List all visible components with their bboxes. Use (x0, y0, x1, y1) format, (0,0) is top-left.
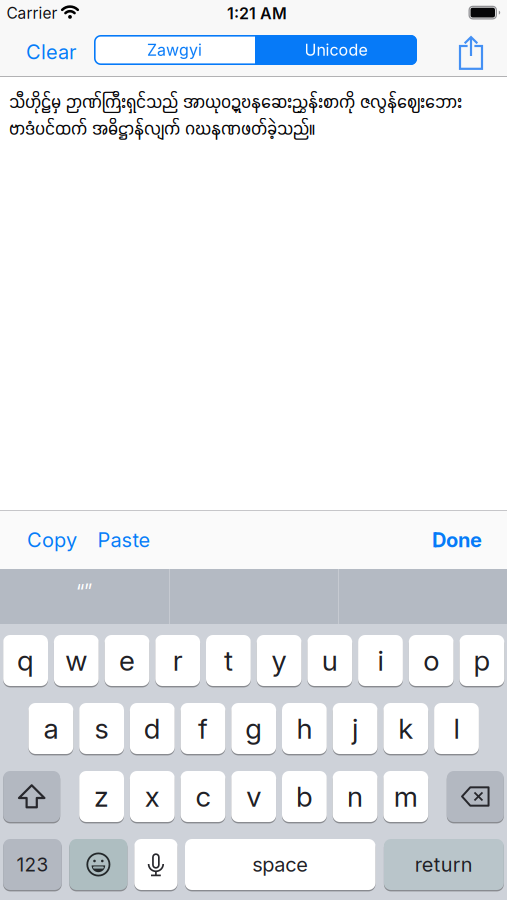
button[interactable]: Dictate (134, 839, 177, 890)
staticText: u (322, 644, 338, 677)
staticText: r (173, 644, 183, 677)
button[interactable]: Clear (16, 35, 86, 69)
staticText: သီဟိုဠ်မှ ဉာဏ်ကြီးရှင်သည် အာယုဝဍ္ဎနဆေးညွ… (9, 88, 462, 142)
button[interactable]: Paste (92, 525, 156, 555)
button[interactable]: Zawgyi (94, 35, 255, 65)
staticText: n (347, 780, 363, 813)
staticText: space (252, 852, 308, 877)
button[interactable]: e (105, 635, 149, 686)
staticText: p (473, 644, 490, 677)
staticText: j (352, 712, 358, 745)
button[interactable]: k (383, 703, 428, 754)
staticText: Zawgyi (147, 40, 202, 60)
staticText: c (195, 780, 210, 813)
staticText: f (198, 712, 208, 745)
button[interactable]: Emoji (69, 839, 127, 890)
button[interactable]: Copy (22, 525, 82, 555)
button[interactable]: f (181, 703, 225, 754)
button[interactable]: 123 (3, 839, 62, 890)
button[interactable]: g (231, 703, 276, 754)
button[interactable]: y (257, 635, 301, 686)
button[interactable]: Done (425, 525, 489, 555)
staticText: x (145, 780, 160, 813)
button[interactable]: o (409, 635, 454, 686)
staticText: Paste (97, 528, 150, 552)
staticText: “” (76, 579, 92, 602)
staticText: a (43, 712, 58, 745)
button[interactable]: v (231, 771, 276, 822)
staticText: i (377, 644, 383, 677)
staticText: w (65, 644, 87, 677)
staticText: Carrier (6, 4, 57, 22)
staticText: Unicode (304, 40, 367, 60)
button[interactable]: j (333, 703, 377, 754)
staticText: b (296, 780, 313, 813)
button[interactable]: i (358, 635, 403, 686)
staticText: y (272, 644, 287, 677)
staticText: Clear (26, 40, 76, 64)
staticText: 1:21 AM (227, 4, 287, 23)
button[interactable]: q (3, 635, 48, 686)
staticText: z (94, 780, 109, 813)
staticText: v (246, 780, 261, 813)
button[interactable]: p (459, 635, 504, 686)
button[interactable]: a (28, 703, 73, 754)
staticText: q (17, 644, 34, 677)
staticText: l (453, 712, 459, 745)
button[interactable]: n (333, 771, 377, 822)
staticText: g (245, 712, 262, 745)
staticText: return (415, 852, 473, 877)
button[interactable]: l (434, 703, 479, 754)
staticText: e (119, 644, 135, 677)
button[interactable]: c (181, 771, 225, 822)
staticText: 123 (16, 853, 48, 876)
button[interactable]: Shift (3, 771, 60, 822)
staticText: t (224, 644, 233, 677)
button[interactable]: d (130, 703, 175, 754)
button[interactable]: b (282, 771, 327, 822)
staticText: d (144, 712, 161, 745)
staticText: Copy (27, 528, 77, 552)
staticText: Done (432, 528, 482, 552)
button[interactable]: space (185, 839, 375, 890)
button[interactable]: t (206, 635, 251, 686)
button[interactable]: r (155, 635, 200, 686)
button[interactable]: u (307, 635, 352, 686)
button[interactable]: h (282, 703, 327, 754)
button[interactable]: return (384, 839, 504, 890)
button[interactable]: m (383, 771, 428, 822)
button[interactable]: Share (449, 31, 493, 75)
button[interactable]: w (54, 635, 99, 686)
button[interactable]: Unicode (255, 35, 417, 65)
button[interactable]: z (79, 771, 124, 822)
staticText: k (398, 712, 413, 745)
button[interactable]: Delete (447, 771, 504, 822)
staticText: h (296, 712, 312, 745)
staticText: o (423, 644, 439, 677)
button[interactable]: x (130, 771, 175, 822)
staticText: s (95, 712, 109, 745)
staticText: m (394, 780, 418, 813)
button[interactable]: “” (0, 569, 168, 624)
button[interactable]: s (79, 703, 124, 754)
